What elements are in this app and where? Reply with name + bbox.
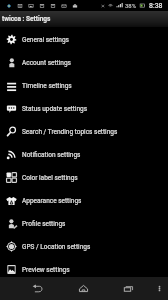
staticText: Notification settings [22, 151, 81, 159]
staticText: 38% [125, 2, 137, 9]
staticText: GPS / Location settings [22, 243, 91, 251]
staticText: Preview settings [22, 266, 70, 274]
staticText: Timeline settings [22, 82, 72, 90]
button[interactable]: Color label settings [0, 166, 168, 189]
button[interactable]: Recent apps [106, 277, 151, 300]
button[interactable]: Timeline settings [0, 74, 168, 97]
button[interactable]: General settings [0, 28, 168, 51]
button[interactable]: Status update settings [0, 97, 168, 120]
button[interactable]: Profile settings [0, 212, 168, 235]
button[interactable]: Home [60, 277, 106, 300]
staticText: twicca : Settings [2, 15, 51, 23]
button[interactable]: GPS / Location settings [0, 235, 168, 258]
staticText: General settings [22, 36, 69, 44]
staticText: Color label settings [22, 174, 78, 182]
button[interactable]: More options [151, 277, 168, 300]
staticText: Profile settings [22, 220, 66, 228]
staticText: Search / Trending topics settings [22, 128, 118, 136]
button[interactable]: Appearance settings [0, 189, 168, 212]
button[interactable]: Notification settings [0, 143, 168, 166]
button[interactable]: Search / Trending topics settings [0, 120, 168, 143]
button[interactable]: Preview settings [0, 258, 168, 281]
staticText: Account settings [22, 59, 71, 67]
button[interactable]: Account settings [0, 51, 168, 74]
staticText: Status update settings [22, 105, 88, 113]
staticText: 8:38 [149, 2, 163, 10]
staticText: Appearance settings [22, 197, 82, 205]
button[interactable]: Back [14, 277, 60, 300]
